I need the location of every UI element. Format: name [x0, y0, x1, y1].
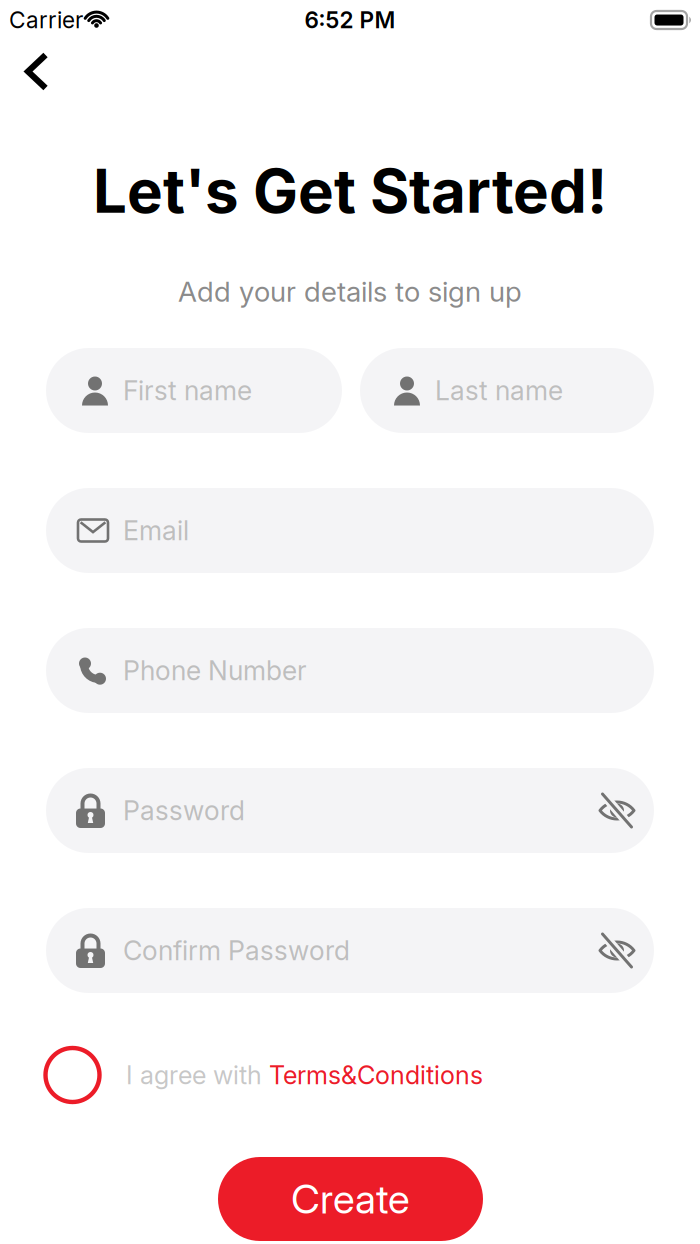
- button[interactable]: Last name: [360, 348, 654, 433]
- staticText: Carrier: [9, 7, 83, 33]
- button[interactable]: Terms&Conditions: [269, 1060, 483, 1090]
- staticText: Phone Number: [123, 655, 307, 686]
- staticText: Create: [291, 1175, 410, 1223]
- staticText: Confirm Password: [123, 935, 350, 966]
- staticText: First name: [123, 375, 252, 406]
- staticText: Last name: [435, 375, 563, 406]
- staticText: I agree with: [126, 1060, 269, 1090]
- staticText: Password: [123, 795, 245, 826]
- button[interactable]: Email: [46, 488, 654, 573]
- staticText: Terms&Conditions: [269, 1060, 483, 1090]
- button[interactable]: Password: [46, 768, 654, 853]
- button[interactable]: Agree with terms and conditions: [45, 1048, 99, 1102]
- button[interactable]: Back: [8, 43, 64, 99]
- button[interactable]: Phone Number: [46, 628, 654, 713]
- staticText: Add your details to sign up: [178, 275, 522, 308]
- button[interactable]: Confirm Password: [46, 908, 654, 993]
- button[interactable]: Create: [218, 1157, 483, 1241]
- staticText: 6:52 PM: [304, 7, 395, 33]
- button[interactable]: Show password: [600, 933, 634, 967]
- button[interactable]: Show password: [600, 793, 634, 827]
- staticText: Let's Get Started!: [93, 156, 607, 226]
- button[interactable]: First name: [46, 348, 342, 433]
- staticText: Email: [123, 515, 189, 546]
